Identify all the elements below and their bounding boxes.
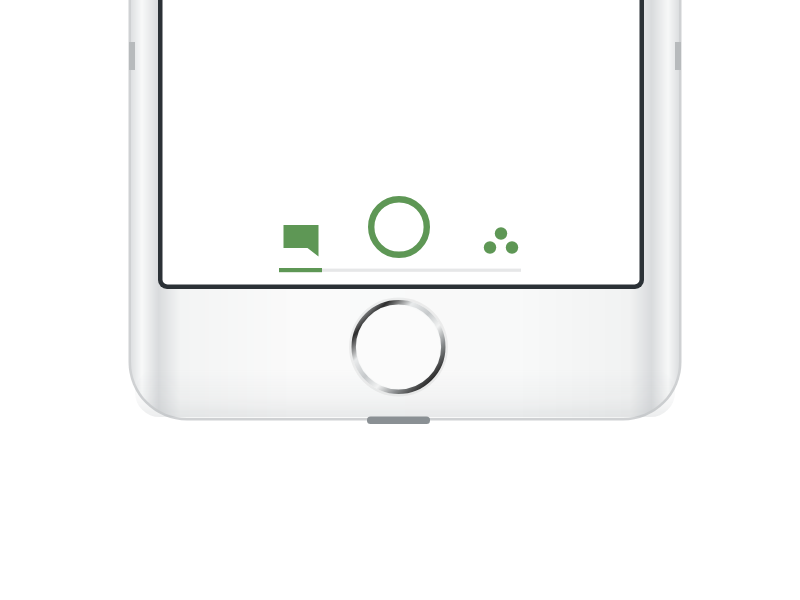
button[interactable]: Capture <box>366 196 432 258</box>
button[interactable]: More <box>472 216 532 264</box>
button[interactable]: Home <box>352 300 446 394</box>
button[interactable]: Messages <box>268 216 334 264</box>
